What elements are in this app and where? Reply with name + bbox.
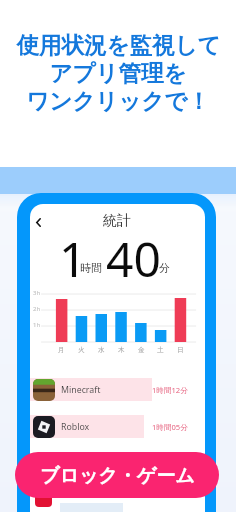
staticText: ワンクリックで！ bbox=[26, 87, 210, 115]
staticText: 統計 bbox=[103, 212, 131, 230]
staticText: Minecraft bbox=[61, 384, 101, 396]
staticText: 40 bbox=[106, 226, 161, 291]
staticText: 2h bbox=[33, 305, 41, 313]
staticText: ブロック・ゲーム bbox=[40, 464, 195, 488]
button[interactable]: Minecraft bbox=[30, 378, 205, 401]
staticText: 1時間12分 bbox=[152, 385, 188, 395]
staticText: 1h bbox=[33, 321, 41, 329]
staticText: 土 bbox=[157, 346, 164, 354]
staticText: 3h bbox=[33, 289, 41, 297]
staticText: 火 bbox=[78, 346, 85, 354]
staticText: 日 bbox=[177, 346, 184, 354]
staticText: 月 bbox=[58, 346, 65, 354]
staticText: 使用状況を監視して bbox=[16, 31, 221, 59]
staticText: 金 bbox=[138, 346, 145, 354]
staticText: 1 bbox=[59, 226, 87, 291]
staticText: 水 bbox=[98, 346, 105, 354]
staticText: 1時間05分 bbox=[152, 422, 188, 432]
staticText: 時間 bbox=[80, 261, 102, 275]
staticText: 分 bbox=[159, 261, 170, 275]
button[interactable]: Back bbox=[30, 212, 48, 232]
staticText: Roblox bbox=[61, 421, 90, 433]
button[interactable]: Roblox bbox=[30, 415, 205, 438]
staticText: 木 bbox=[118, 346, 125, 354]
staticText: アプリ管理を bbox=[49, 59, 187, 87]
button[interactable]: ブロック・ゲーム bbox=[15, 452, 219, 498]
